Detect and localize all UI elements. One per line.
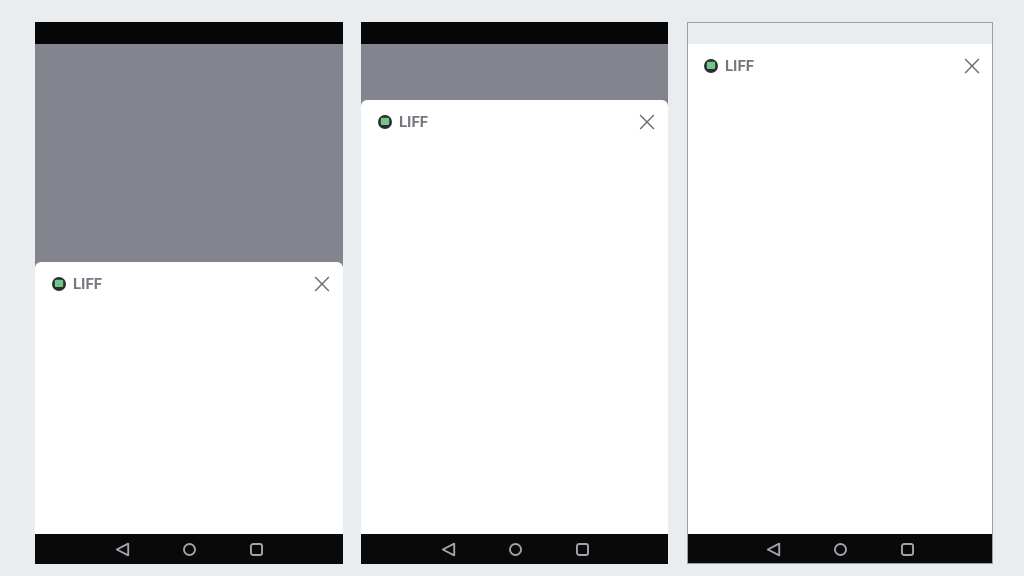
button[interactable]: Home <box>827 536 853 562</box>
button[interactable]: LIFF <box>52 275 102 293</box>
button[interactable]: Recent apps <box>569 536 595 562</box>
staticText: LIFF <box>725 57 754 75</box>
staticText: LIFF <box>73 275 102 293</box>
button[interactable]: Recent apps <box>894 536 920 562</box>
staticText: LIFF <box>399 113 428 131</box>
button[interactable]: Home <box>176 536 202 562</box>
button[interactable]: LIFF <box>704 57 754 75</box>
button[interactable]: Back <box>435 536 461 562</box>
button[interactable]: LIFF <box>378 113 428 131</box>
button[interactable]: Close LIFF view <box>634 109 660 135</box>
button[interactable]: Home <box>502 536 528 562</box>
button[interactable]: Back <box>760 536 786 562</box>
button[interactable]: Close LIFF view <box>959 53 985 79</box>
button[interactable]: Recent apps <box>243 536 269 562</box>
button[interactable]: Back <box>109 536 135 562</box>
button[interactable]: Close LIFF view <box>309 271 335 297</box>
